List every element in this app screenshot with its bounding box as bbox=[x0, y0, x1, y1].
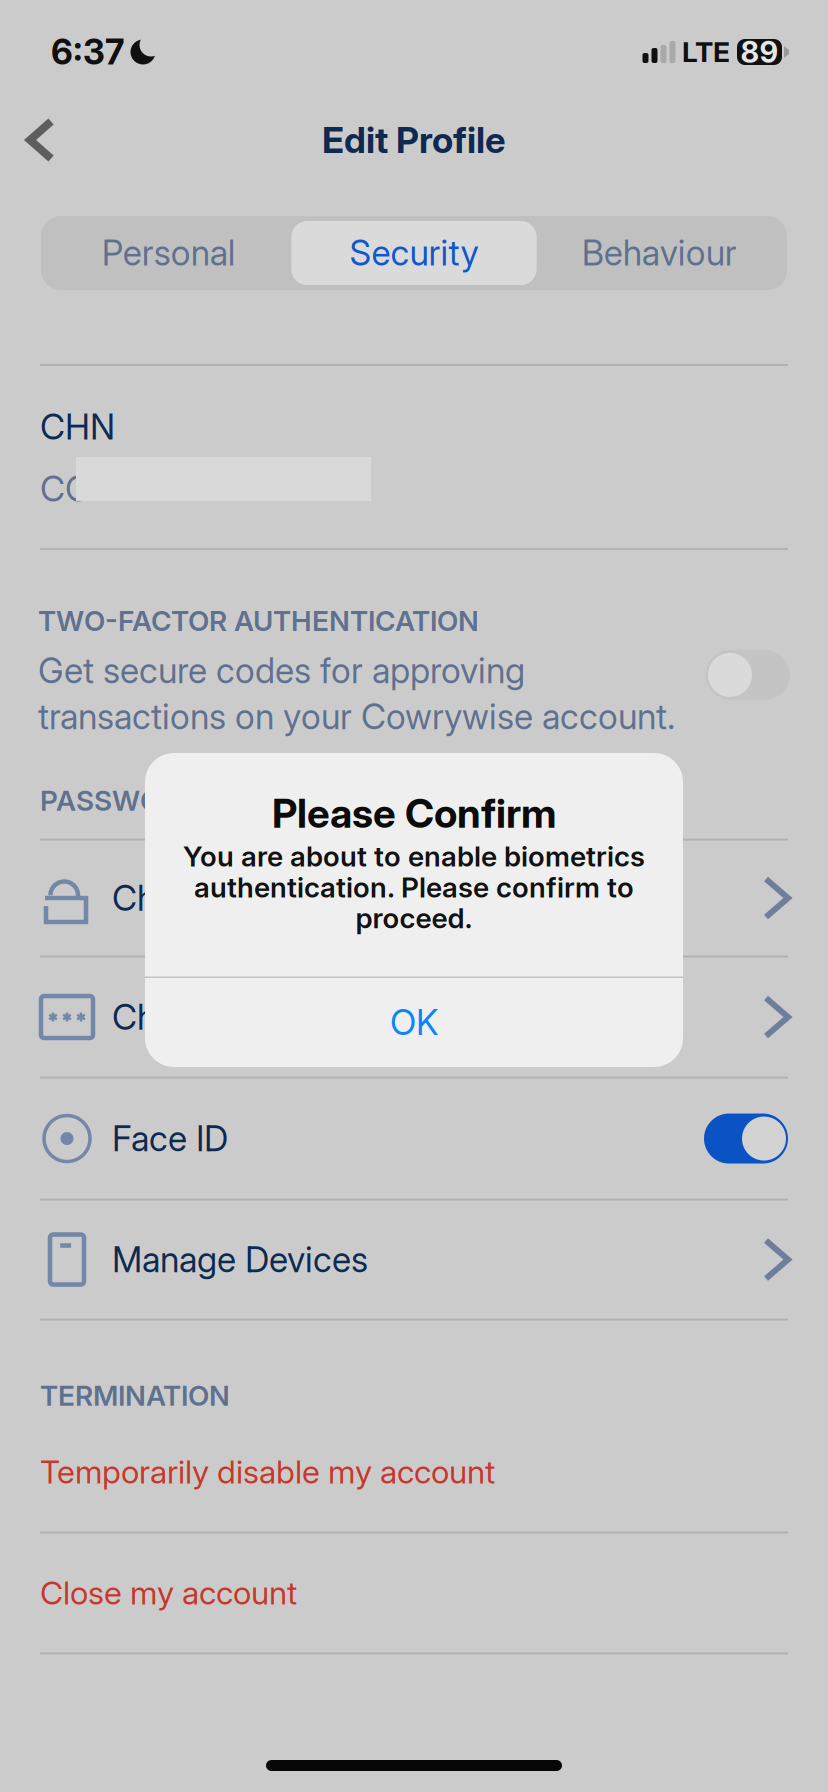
staticText: CHN bbox=[40, 406, 115, 448]
staticText: Close my account bbox=[40, 1574, 297, 1612]
button[interactable]: Close my account bbox=[0, 1533, 828, 1652]
staticText: TERMINATION bbox=[40, 1378, 230, 1412]
staticText: Please Confirm bbox=[272, 789, 556, 837]
staticText: Temporarily disable my account bbox=[40, 1453, 495, 1491]
staticText: transactions on your Cowrywise account. bbox=[38, 696, 675, 738]
button[interactable]: Manage Devices bbox=[0, 1200, 828, 1318]
staticText: OK bbox=[390, 1001, 438, 1043]
staticText: CO bbox=[40, 468, 91, 510]
staticText: 89 bbox=[740, 34, 778, 70]
staticText: LTE bbox=[682, 35, 730, 69]
button[interactable]: Two-factor authentication bbox=[706, 650, 790, 700]
button[interactable]: Behaviour bbox=[537, 221, 782, 285]
staticText: Get secure codes for approving bbox=[38, 650, 525, 692]
button[interactable]: OK bbox=[145, 978, 683, 1067]
staticText: Edit Profile bbox=[322, 118, 506, 162]
staticText: authentication. Please confirm to bbox=[194, 870, 634, 904]
staticText: Manage Devices bbox=[112, 1239, 368, 1280]
button[interactable]: Back bbox=[0, 105, 79, 174]
staticText: Security bbox=[349, 232, 478, 274]
staticText: Change Password bbox=[112, 877, 391, 919]
staticText: Behaviour bbox=[582, 232, 737, 274]
staticText: Personal bbox=[102, 232, 236, 274]
button[interactable]: Personal bbox=[46, 221, 291, 285]
staticText: Change PIN bbox=[112, 996, 296, 1038]
staticText: You are about to enable biometrics bbox=[183, 839, 645, 873]
staticText: PASSWORD bbox=[40, 784, 199, 818]
button[interactable]: Face ID bbox=[0, 1078, 828, 1198]
staticText: TWO-FACTOR AUTHENTICATION bbox=[38, 604, 479, 638]
button[interactable]: Security bbox=[291, 221, 537, 285]
staticText: proceed. bbox=[355, 901, 472, 935]
button[interactable]: Change PIN bbox=[0, 957, 828, 1076]
staticText: Face ID bbox=[112, 1118, 228, 1159]
staticText: 6:37 bbox=[51, 31, 124, 73]
button[interactable]: Temporarily disable my account bbox=[0, 1412, 828, 1531]
button[interactable]: Change Password bbox=[0, 840, 828, 955]
